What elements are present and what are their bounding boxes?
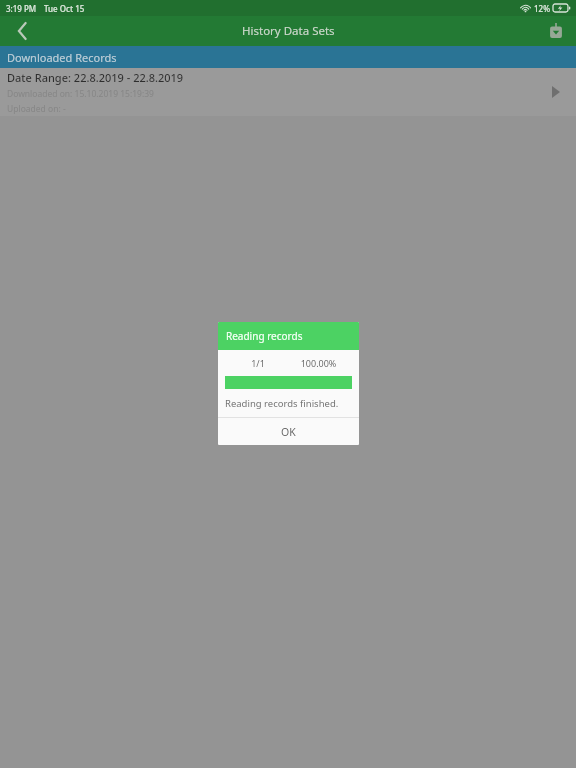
button[interactable]: OK [218,418,359,445]
button[interactable]: Back [0,16,44,46]
staticText: 1/1 [228,357,288,369]
staticText: Reading records finished. [225,397,339,410]
staticText: Tue Oct 15 [44,3,85,14]
staticText: Downloaded Records [7,50,117,65]
button[interactable]: Download [536,16,576,46]
staticText: History Data Sets [242,23,335,39]
staticText: Date Range: 22.8.2019 - 22.8.2019 [7,70,184,85]
staticText: Downloaded on: 15.10.2019 15:19:39 [7,88,154,100]
staticText: Uploaded on: - [7,103,66,115]
staticText: OK [281,425,296,439]
button[interactable]: Date Range: 22.8.2019 - 22.8.2019 [0,68,576,116]
staticText: 12% [534,3,550,14]
staticText: Reading records [226,329,303,343]
staticText: 100.00% [288,357,349,369]
staticText: 3:19 PM [6,3,37,14]
